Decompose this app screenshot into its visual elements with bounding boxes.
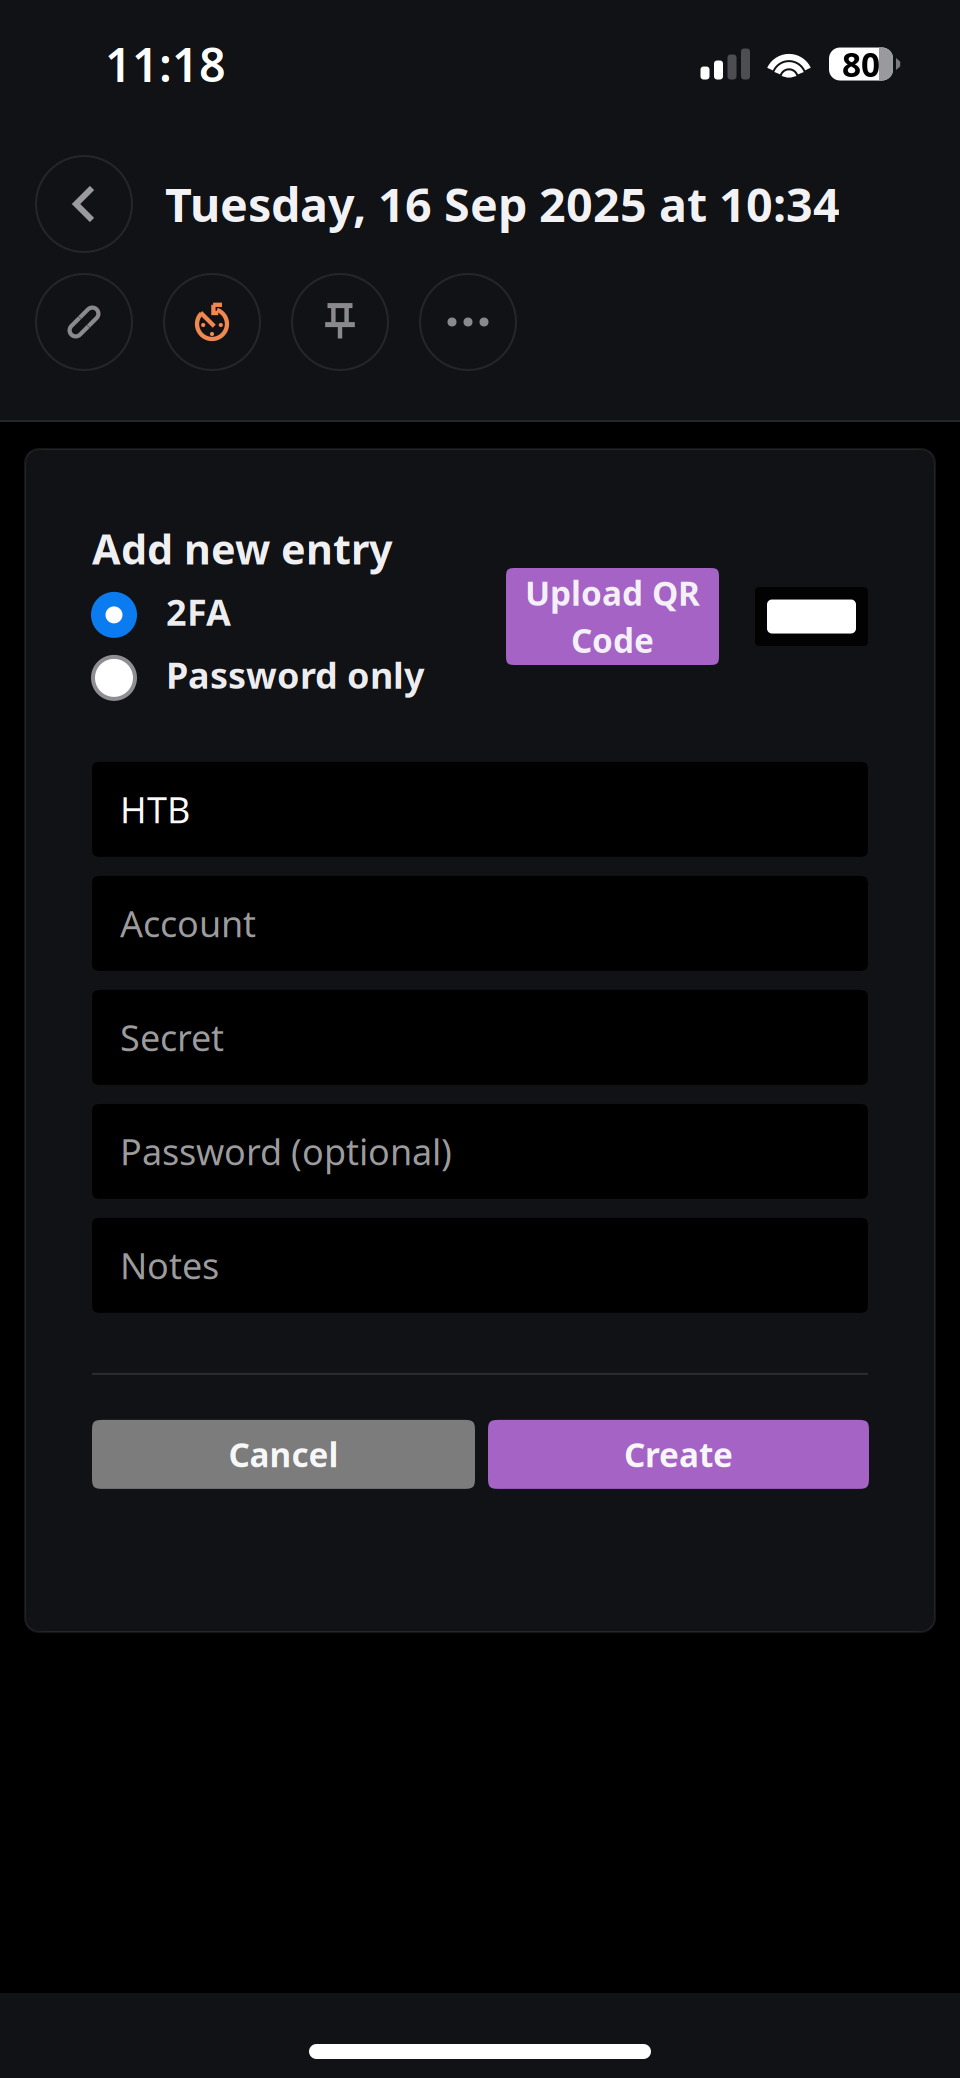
staticText: Upload QR	[525, 571, 700, 615]
staticText: Tuesday, 16 Sep 2025 at 10:34	[165, 173, 840, 235]
button[interactable]: Back	[36, 156, 132, 252]
button[interactable]: Account	[92, 876, 868, 971]
staticText: Create	[624, 1432, 733, 1477]
button[interactable]: Password only	[91, 655, 471, 701]
staticText: Account	[120, 899, 256, 947]
button[interactable]: 2FA	[91, 592, 471, 638]
staticText: Password (optional)	[120, 1127, 452, 1175]
staticText: 11:18	[105, 33, 226, 95]
button[interactable]: Notes	[92, 1218, 868, 1313]
button[interactable]: Cancel	[92, 1420, 475, 1489]
staticText: Add new entry	[92, 521, 393, 576]
staticText: Secret	[120, 1013, 224, 1061]
staticText: Cancel	[228, 1432, 338, 1477]
button[interactable]: Copy link	[36, 274, 132, 370]
button[interactable]: Secret	[92, 990, 868, 1085]
button[interactable]: HTB	[92, 762, 868, 857]
button[interactable]: Create	[488, 1420, 869, 1489]
staticText: Notes	[120, 1241, 219, 1289]
staticText: 80	[842, 42, 880, 86]
staticText: 2FA	[166, 588, 231, 636]
button[interactable]: Timer	[164, 274, 260, 370]
staticText: Password only	[166, 651, 425, 699]
button[interactable]: Password (optional)	[92, 1104, 868, 1199]
staticText: Code	[571, 618, 654, 662]
staticText: HTB	[120, 785, 190, 833]
button[interactable]: Pin	[292, 274, 388, 370]
button[interactable]: More	[420, 274, 516, 370]
button[interactable]: Upload QR	[506, 568, 719, 665]
